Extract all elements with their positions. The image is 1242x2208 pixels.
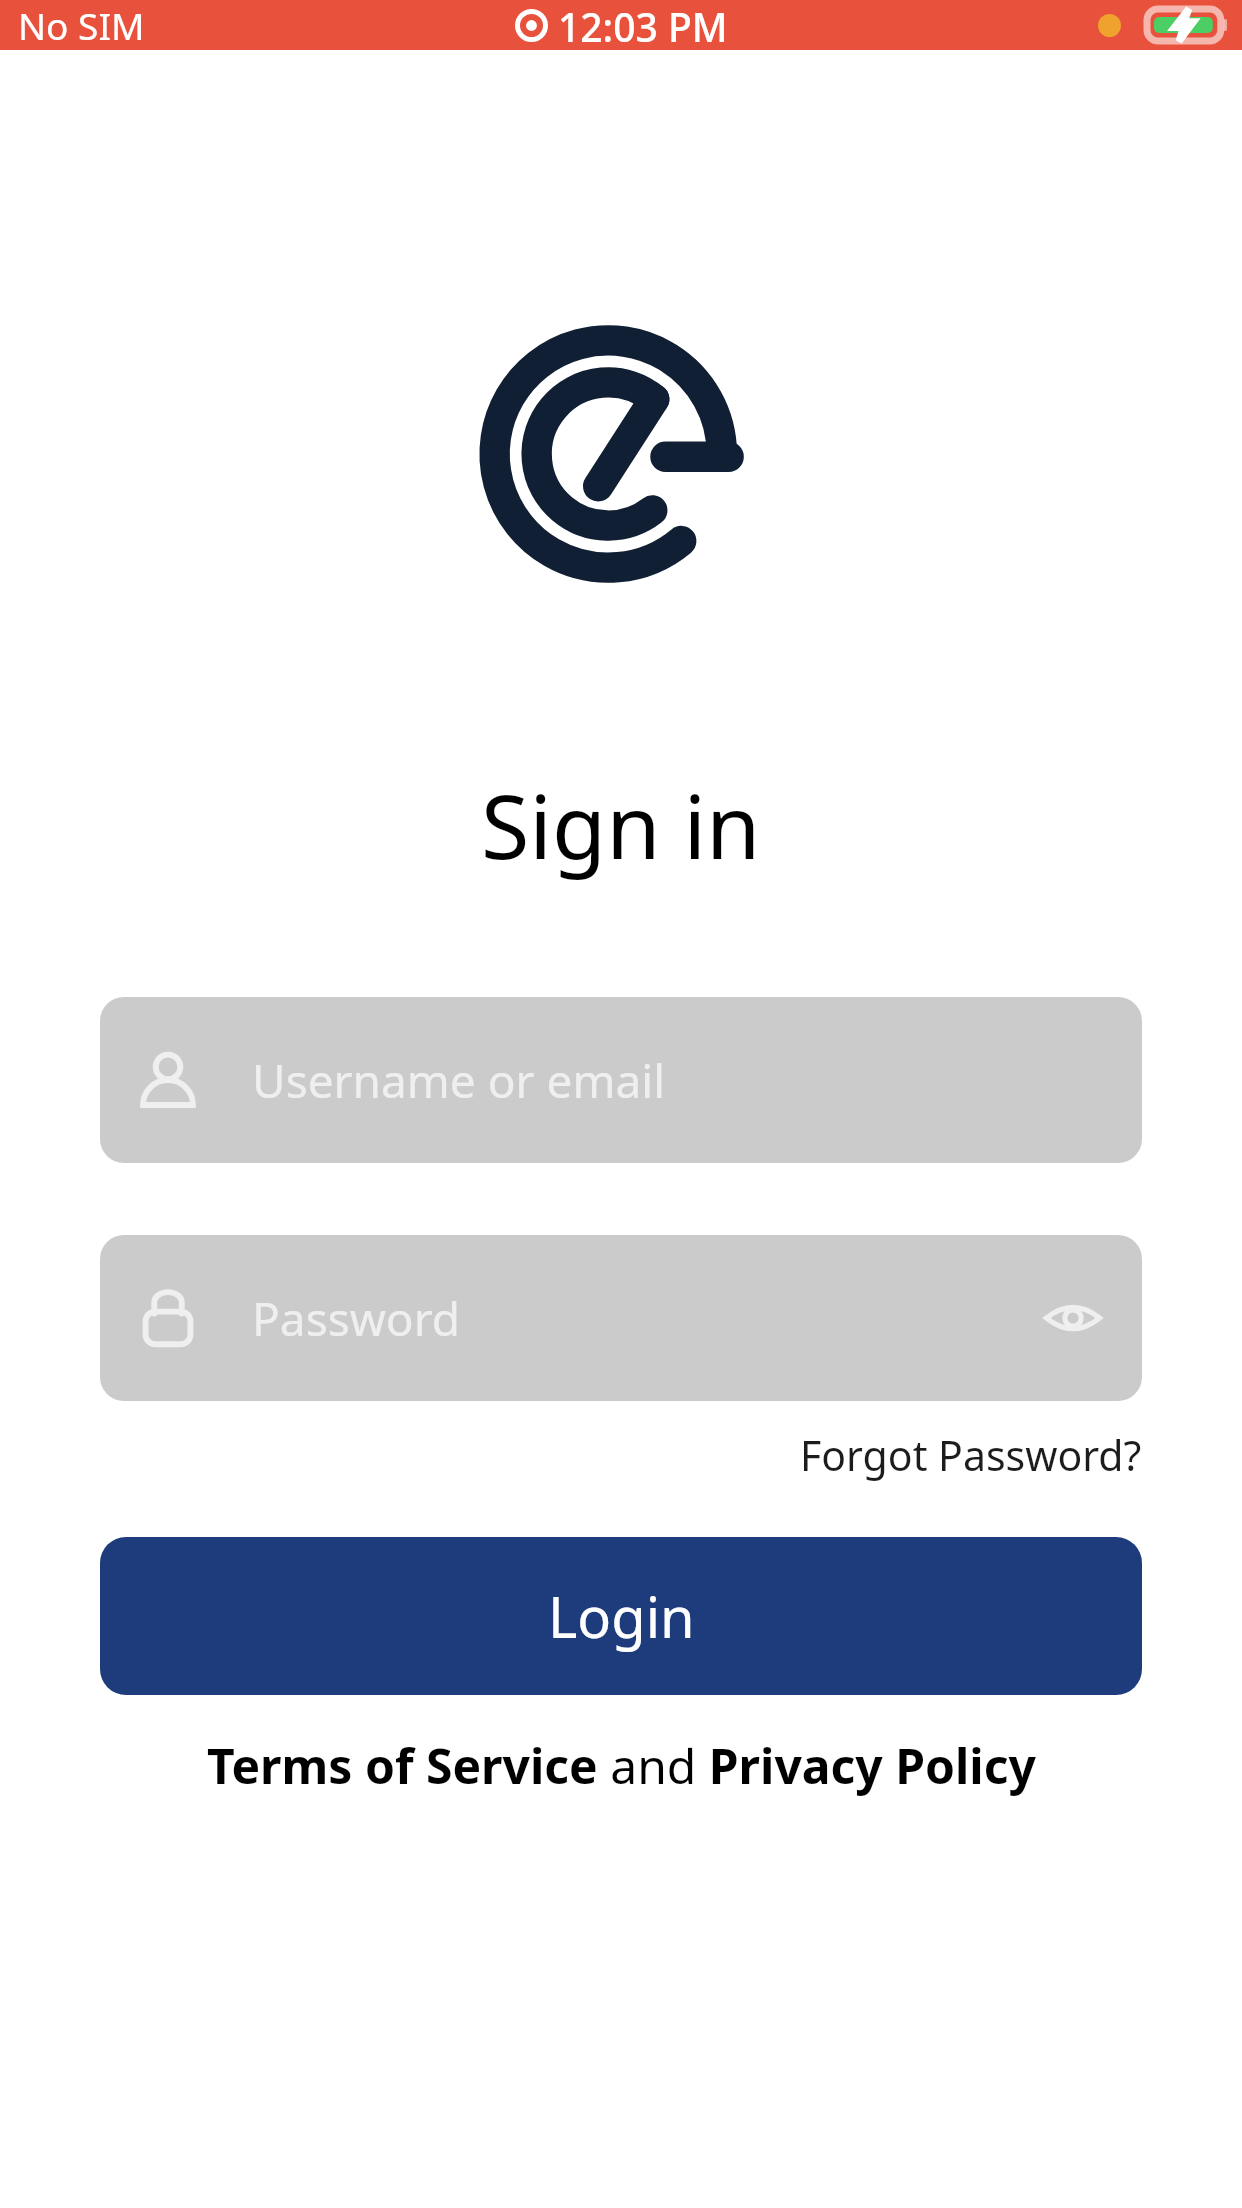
staticText: 12:03 PM — [558, 0, 728, 50]
button[interactable]: Show password — [1044, 1289, 1102, 1347]
staticText: Terms of Service and Privacy Policy — [207, 1733, 1036, 1798]
staticText: Password — [252, 1287, 1044, 1350]
staticText: Forgot Password? — [800, 1427, 1142, 1483]
staticText: Username or email — [252, 1049, 1102, 1112]
button[interactable]: Forgot Password? — [796, 1423, 1146, 1487]
button[interactable]: Password — [100, 1235, 1142, 1401]
staticText: Login — [548, 1578, 695, 1654]
button[interactable]: Username or email — [100, 997, 1142, 1163]
button[interactable]: Terms of Service and Privacy Policy — [197, 1729, 1046, 1802]
staticText: Sign in — [481, 765, 761, 885]
staticText: No SIM — [18, 0, 145, 50]
button[interactable]: Login — [100, 1537, 1142, 1695]
